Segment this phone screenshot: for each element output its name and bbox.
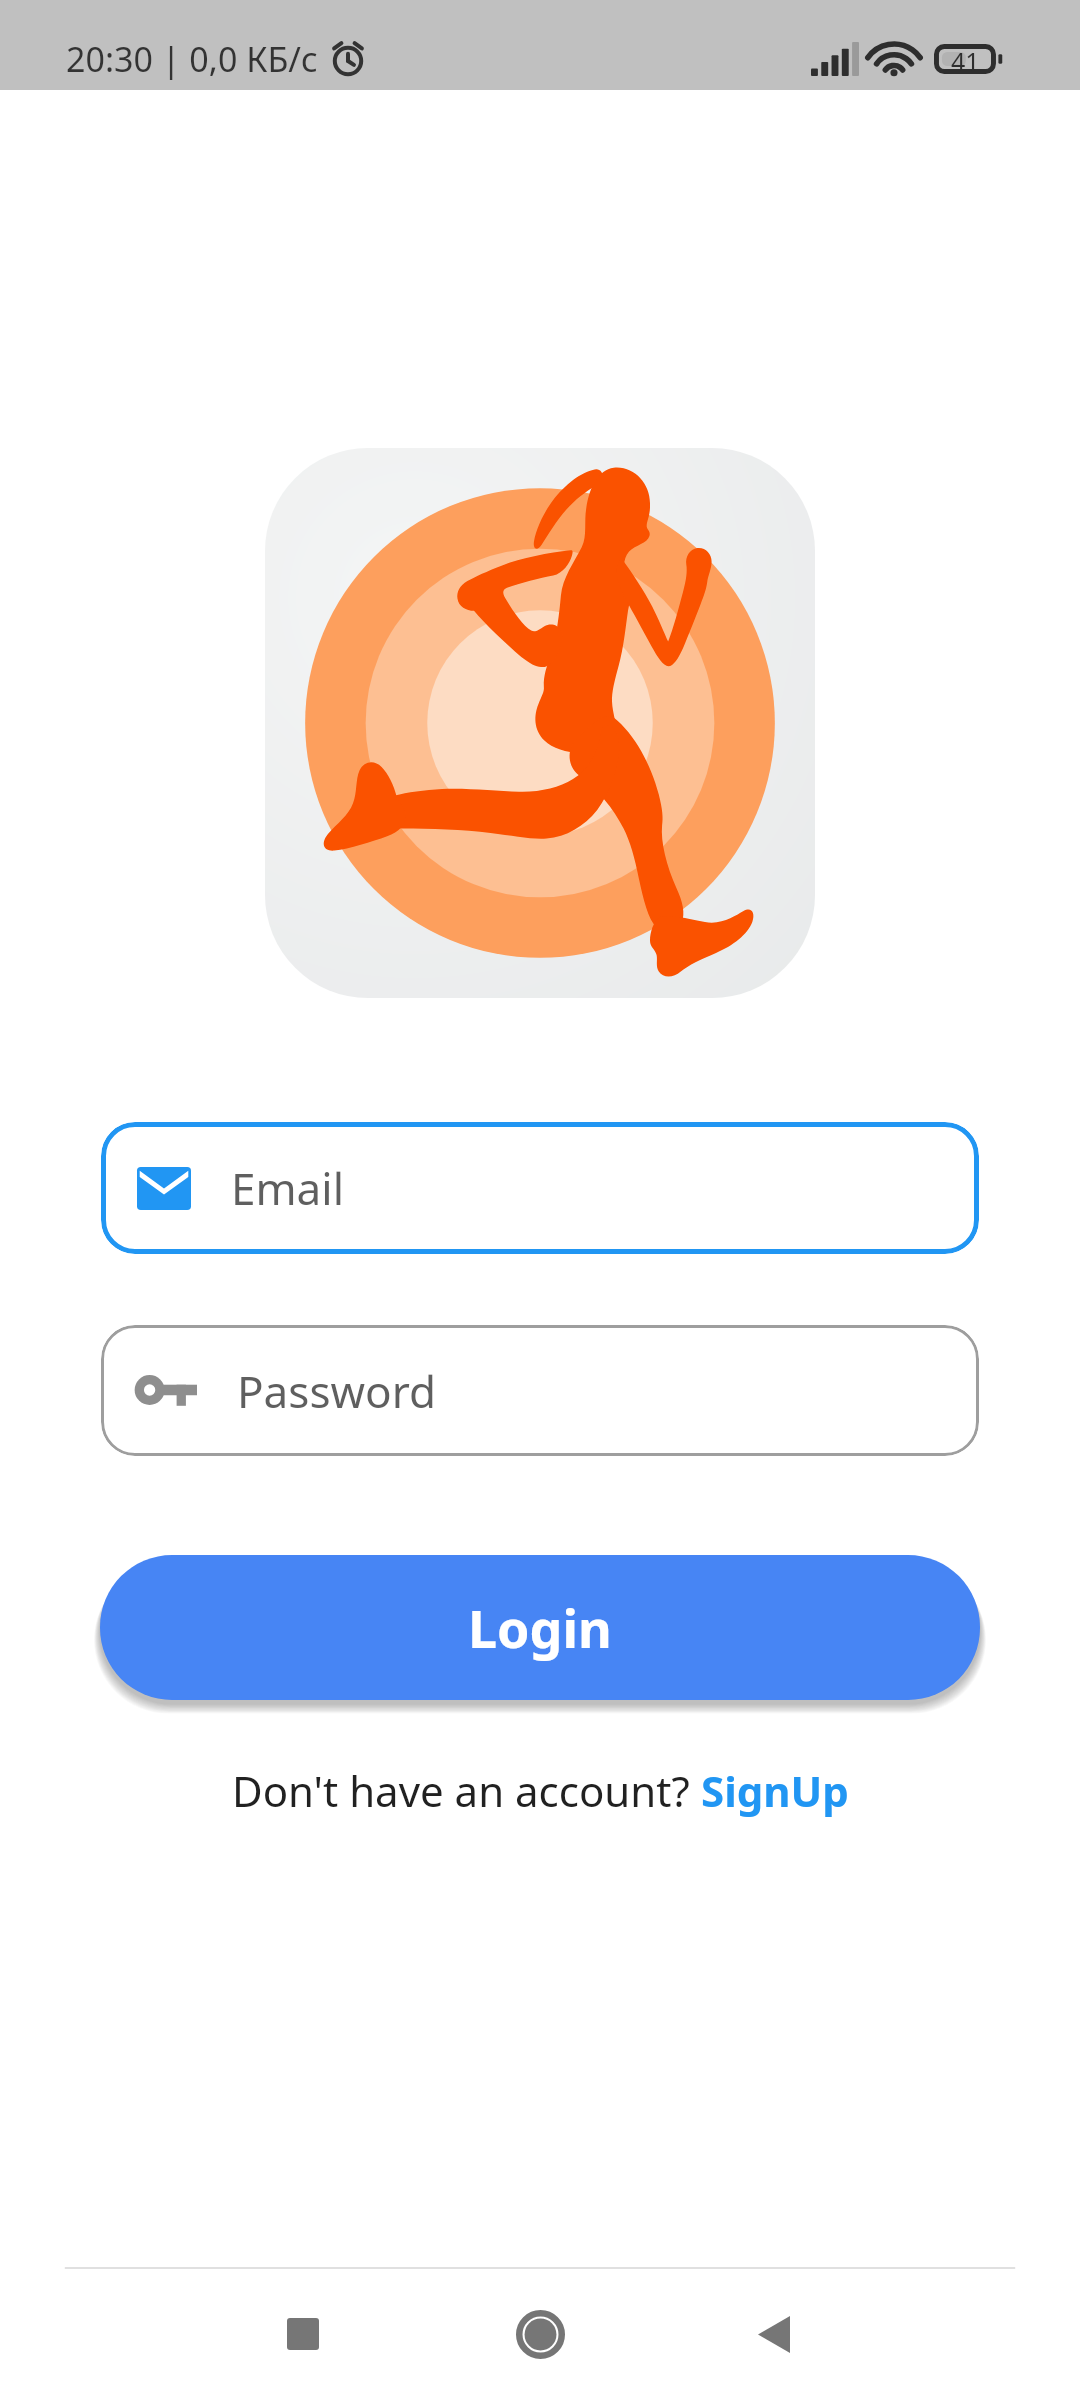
staticText: Email [231, 1158, 344, 1218]
staticText: Login [468, 1592, 612, 1663]
staticText: 20:30 | 0,0 КБ/с [66, 36, 318, 82]
button[interactable]: Login [100, 1555, 980, 1700]
button[interactable]: SignUp [701, 1762, 849, 1819]
button[interactable]: Back [706, 2268, 842, 2400]
button[interactable]: Recent apps [235, 2268, 371, 2400]
button[interactable]: Home [472, 2268, 608, 2400]
staticText: Password [237, 1361, 437, 1421]
button[interactable]: Password [101, 1325, 979, 1456]
button[interactable]: Email [101, 1122, 979, 1254]
staticText: SignUp [701, 1762, 849, 1819]
staticText: Don't have an account? [232, 1762, 701, 1819]
staticText: 41 [951, 44, 980, 74]
